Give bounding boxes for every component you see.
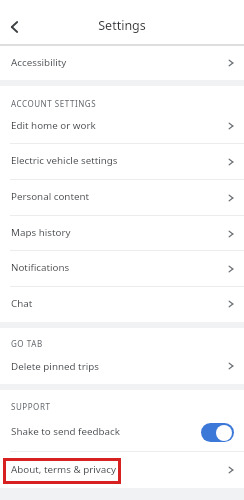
staticText: Chat xyxy=(11,297,33,310)
staticText: SUPPORT xyxy=(11,401,51,412)
other: Shake to send feedback toggle xyxy=(201,423,234,442)
button[interactable]: Maps history xyxy=(0,216,244,251)
button[interactable]: Accessibility xyxy=(0,45,244,80)
button[interactable]: Delete pinned trips xyxy=(0,348,244,383)
staticText: Accessibility xyxy=(11,56,67,69)
staticText: Delete pinned trips xyxy=(11,360,99,373)
button[interactable]: About, terms & privacy xyxy=(0,452,244,488)
button[interactable]: Back xyxy=(2,14,27,39)
staticText: Edit home or work xyxy=(11,119,96,132)
button[interactable]: Shake to send feedback xyxy=(0,414,244,451)
staticText: Maps history xyxy=(11,226,71,239)
button[interactable]: Personal content xyxy=(0,180,244,215)
staticText: GO TAB xyxy=(11,338,43,349)
button[interactable]: Edit home or work xyxy=(0,108,244,144)
button[interactable]: Electric vehicle settings xyxy=(0,144,244,179)
staticText: Settings xyxy=(0,17,244,34)
staticText: Shake to send feedback xyxy=(11,425,120,438)
staticText: Notifications xyxy=(11,261,70,274)
staticText: Electric vehicle settings xyxy=(11,154,118,167)
staticText: About, terms & privacy xyxy=(11,463,116,476)
button[interactable]: Notifications xyxy=(0,251,244,286)
button[interactable]: Chat xyxy=(0,287,244,321)
staticText: Personal content xyxy=(11,190,90,203)
staticText: ACCOUNT SETTINGS xyxy=(11,98,97,109)
